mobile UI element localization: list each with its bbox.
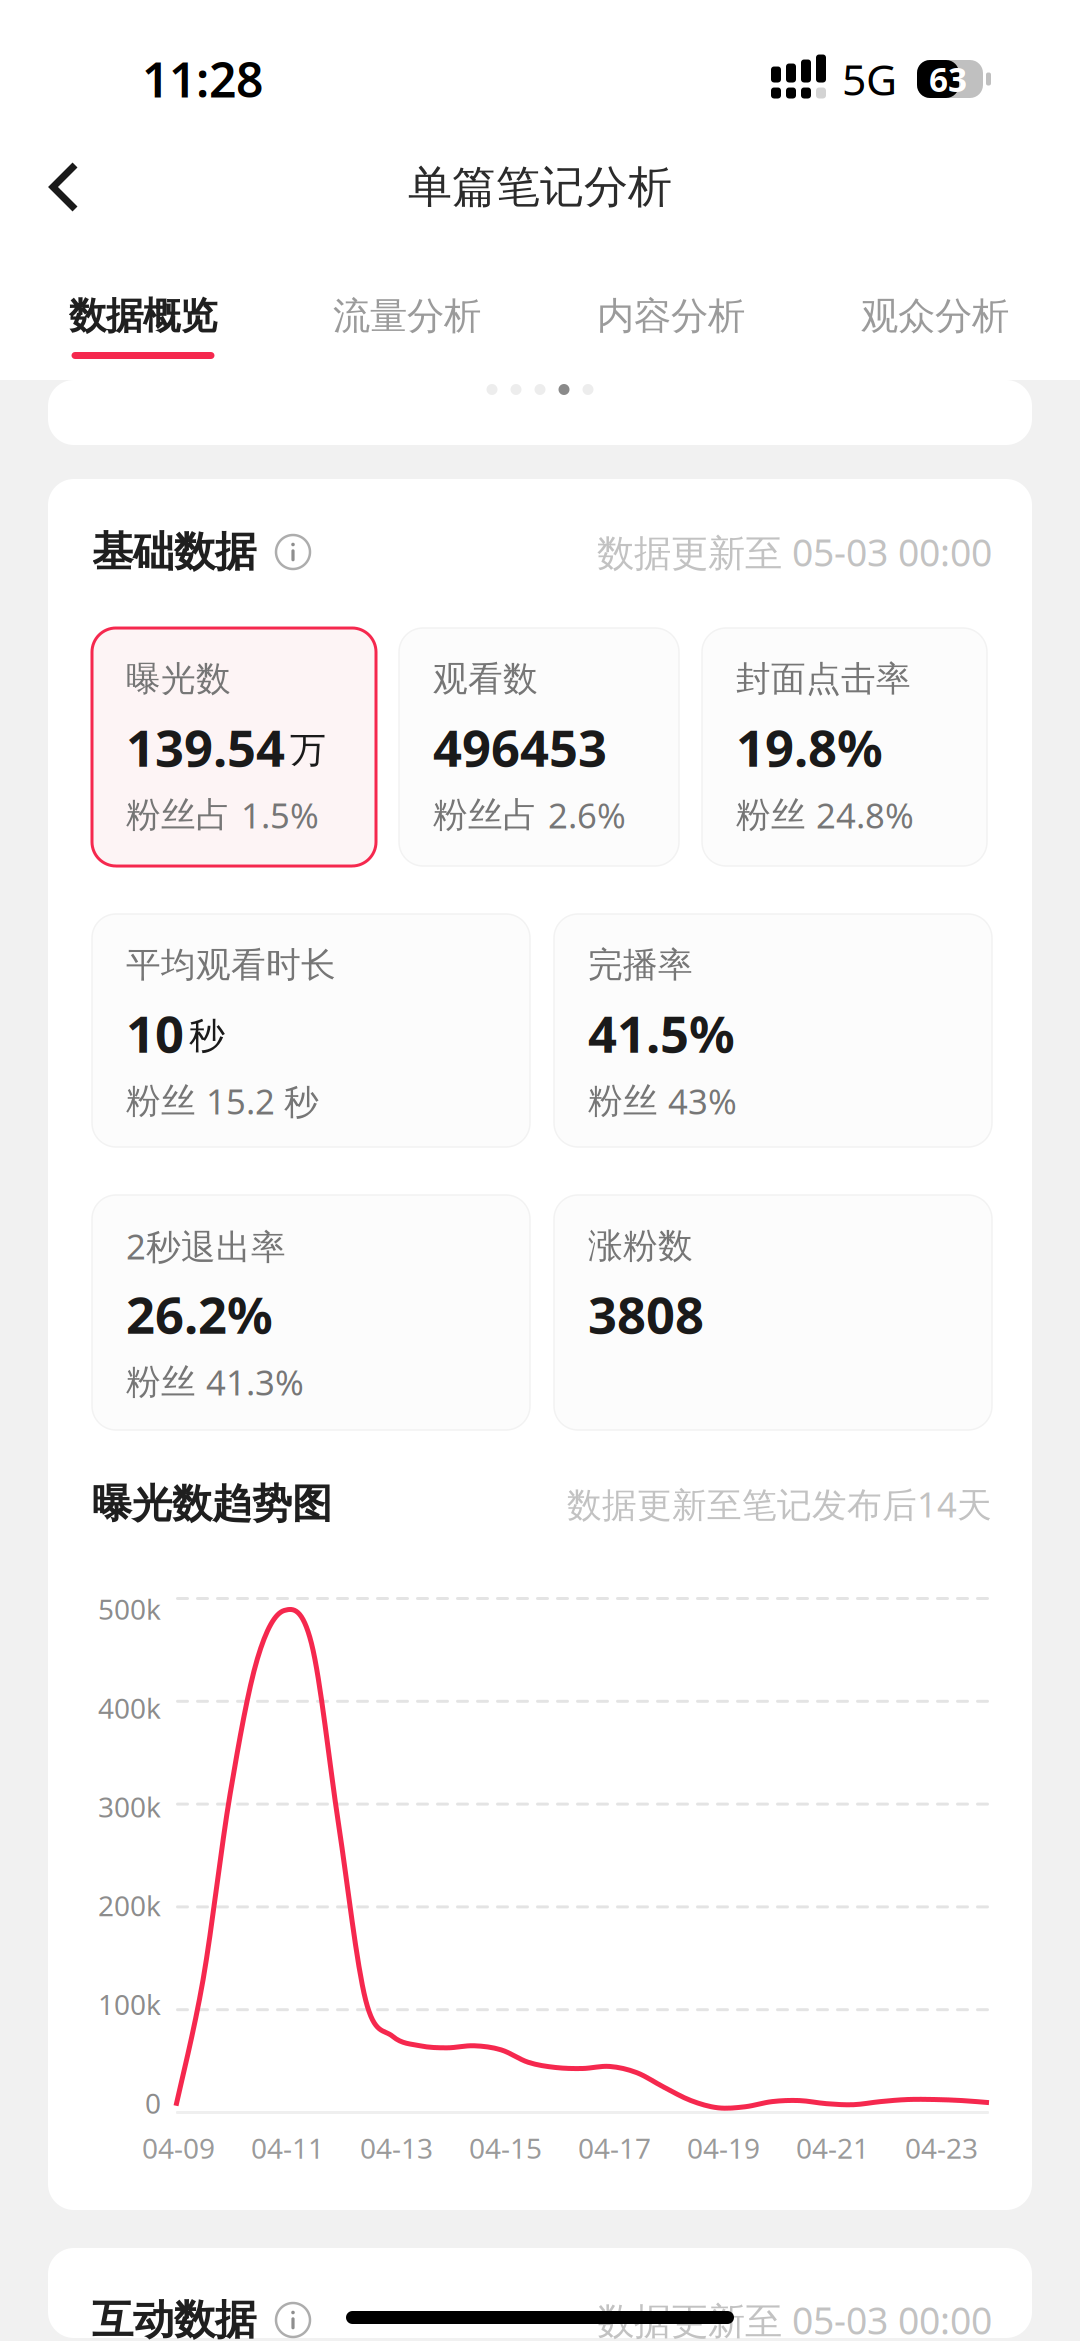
button[interactable]: 数据概览 — [11, 294, 275, 359]
staticText: 10 — [126, 999, 184, 1067]
staticText: 数据更新至 05-03 00:00 — [597, 527, 992, 577]
staticText: 完播率 — [588, 944, 693, 986]
button[interactable]: 观众分析 — [803, 294, 1067, 359]
staticText: 04-11 — [251, 2129, 324, 2167]
staticText: 观看数 — [433, 658, 538, 700]
staticText: 1.5% — [241, 792, 319, 838]
staticText: 平均观看时长 — [126, 944, 336, 986]
staticText: 04-13 — [360, 2129, 433, 2167]
staticText: 04-09 — [142, 2129, 215, 2167]
staticText: 封面点击率 — [736, 658, 911, 700]
staticText: 04-17 — [578, 2129, 651, 2167]
staticText: 43% — [668, 1078, 737, 1124]
staticText: 粉丝占 — [433, 794, 538, 836]
staticText: 单篇笔记分析 — [408, 160, 672, 214]
staticText: 04-15 — [469, 2129, 542, 2167]
staticText: 11:28 — [142, 47, 263, 111]
staticText: 0 — [145, 2084, 161, 2122]
staticText: 曝光数趋势图 — [92, 1479, 332, 1528]
staticText: 2.6% — [548, 792, 626, 838]
staticText: 139.54 — [126, 713, 285, 781]
staticText: 粉丝占 — [126, 794, 231, 836]
staticText: 15.2 秒 — [206, 1078, 319, 1124]
button[interactable]: 观看数 — [399, 628, 679, 866]
button[interactable]: 返回 — [12, 144, 116, 230]
staticText: 粉丝 — [126, 1080, 196, 1122]
staticText: 3808 — [588, 1280, 704, 1348]
staticText: 5G — [842, 51, 897, 107]
staticText: 04-23 — [905, 2129, 978, 2167]
staticText: 互动数据 — [92, 2295, 256, 2341]
staticText: 400k — [98, 1689, 161, 1726]
staticText: 41.5% — [588, 999, 735, 1067]
staticText: 数据更新至笔记发布后14天 — [567, 1481, 992, 1527]
staticText: 内容分析 — [597, 293, 745, 339]
staticText: 496453 — [433, 713, 607, 781]
button[interactable]: 平均观看时长 — [92, 914, 530, 1147]
staticText: 26.2% — [126, 1280, 273, 1348]
staticText: 500k — [98, 1590, 161, 1628]
staticText: 基础数据 — [92, 527, 256, 577]
button[interactable]: 2秒退出率 — [92, 1195, 530, 1430]
button[interactable]: 说明 — [276, 2303, 310, 2337]
button[interactable]: 完播率 — [554, 914, 992, 1147]
staticText: 数据概览 — [69, 293, 217, 339]
button[interactable]: 封面点击率 — [702, 628, 987, 866]
staticText: 粉丝 — [588, 1080, 658, 1122]
staticText: 流量分析 — [333, 293, 481, 339]
staticText: 观众分析 — [861, 293, 1009, 339]
staticText: 200k — [98, 1887, 161, 1924]
staticText: 24.8% — [816, 792, 914, 838]
staticText: 粉丝 — [736, 794, 806, 836]
staticText: 涨粉数 — [588, 1225, 693, 1267]
staticText: 粉丝 — [126, 1361, 196, 1403]
button[interactable]: 曝光数 — [92, 628, 376, 866]
button[interactable]: 说明 — [276, 535, 310, 569]
button[interactable]: 内容分析 — [539, 294, 803, 359]
staticText: 63 — [929, 57, 967, 101]
staticText: 秒 — [189, 1014, 225, 1058]
staticText: 数据更新至 05-03 00:00 — [597, 2295, 992, 2341]
staticText: 19.8% — [736, 713, 883, 781]
button[interactable]: 流量分析 — [275, 294, 539, 359]
staticText: 100k — [98, 1986, 161, 2023]
staticText: 曝光数 — [126, 658, 231, 700]
staticText: 2秒退出率 — [126, 1223, 286, 1269]
staticText: 04-19 — [687, 2129, 760, 2167]
staticText: 04-21 — [796, 2129, 869, 2167]
staticText: 300k — [98, 1788, 161, 1825]
button[interactable]: 涨粉数 — [554, 1195, 992, 1430]
staticText: 41.3% — [206, 1359, 304, 1405]
staticText: 万 — [290, 728, 326, 772]
